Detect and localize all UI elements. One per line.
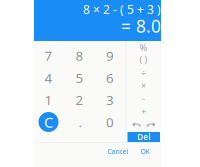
staticText: 3 — [106, 91, 114, 109]
staticText: 9 — [106, 47, 114, 64]
staticText: × — [141, 79, 146, 91]
button[interactable]: + — [128, 105, 158, 117]
button[interactable]: 9 — [95, 44, 125, 66]
staticText: 4 — [44, 69, 52, 87]
staticText: OK — [140, 147, 149, 156]
staticText: - — [142, 92, 145, 105]
staticText: 7 — [44, 47, 52, 64]
button[interactable]: 0 — [95, 111, 125, 133]
button[interactable]: 2 — [64, 89, 94, 111]
staticText: C — [44, 112, 53, 132]
staticText: Cancel — [107, 147, 128, 156]
button[interactable]: . — [65, 111, 95, 133]
button[interactable]: 7 — [33, 44, 63, 66]
staticText: 8 × 2 - ( 5 + 3 ) — [83, 1, 161, 17]
staticText: 1 — [44, 91, 52, 109]
button[interactable]: Undo — [129, 119, 143, 130]
button[interactable]: Cancel — [105, 145, 131, 158]
button[interactable]: % — [128, 41, 158, 53]
staticText: ÷ — [141, 66, 146, 79]
staticText: ( ) — [139, 53, 147, 65]
staticText: % — [139, 41, 147, 54]
button[interactable]: 3 — [95, 89, 125, 111]
button[interactable]: 8 — [64, 44, 94, 66]
button[interactable]: Clear — [35, 111, 61, 133]
button[interactable]: OK — [137, 145, 153, 158]
button[interactable]: 4 — [33, 67, 63, 89]
staticText: 8 — [75, 47, 83, 64]
button[interactable]: 5 — [64, 67, 94, 89]
staticText: = 8.0 — [121, 14, 161, 37]
button[interactable]: Del — [127, 132, 160, 142]
button[interactable]: 1 — [33, 89, 63, 111]
staticText: 2 — [75, 91, 83, 109]
staticText: 0 — [106, 113, 114, 131]
button[interactable]: Redo — [144, 119, 158, 130]
staticText: . — [78, 113, 82, 131]
button[interactable]: ( ) — [128, 53, 158, 65]
button[interactable]: ÷ — [128, 66, 158, 78]
button[interactable]: - — [128, 92, 158, 104]
staticText: 6 — [106, 69, 114, 87]
staticText: 5 — [75, 69, 83, 87]
staticText: Del — [137, 132, 150, 142]
staticText: + — [141, 105, 146, 117]
button[interactable]: 6 — [95, 67, 125, 89]
button[interactable]: × — [128, 79, 158, 91]
